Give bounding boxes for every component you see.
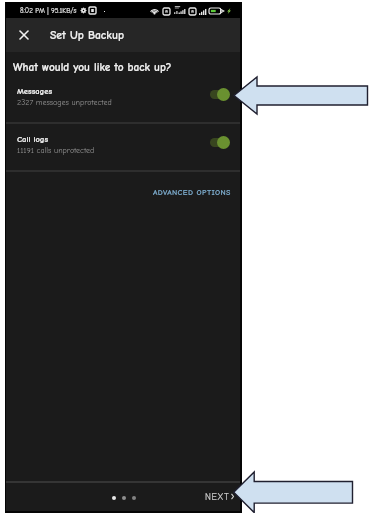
- button[interactable]: Close: [12, 23, 36, 47]
- button[interactable]: Messages: [6, 84, 240, 123]
- staticText: NEXT: [205, 492, 230, 502]
- staticText: Set Up Backup: [50, 29, 124, 42]
- button[interactable]: ADVANCED OPTIONS: [143, 180, 241, 204]
- staticText: 2327 messages unprotected: [17, 98, 112, 107]
- staticText: 11191 calls unprotected: [17, 146, 95, 155]
- button[interactable]: NEXT: [199, 486, 238, 507]
- staticText: 8:02 PM | 95.1KB/s: [20, 7, 77, 15]
- button[interactable]: Call logs: [6, 132, 240, 171]
- staticText: ADVANCED OPTIONS: [153, 188, 231, 197]
- staticText: Messages: [17, 86, 53, 96]
- staticText: What would you like to back up?: [13, 61, 172, 74]
- staticText: Call logs: [17, 134, 49, 144]
